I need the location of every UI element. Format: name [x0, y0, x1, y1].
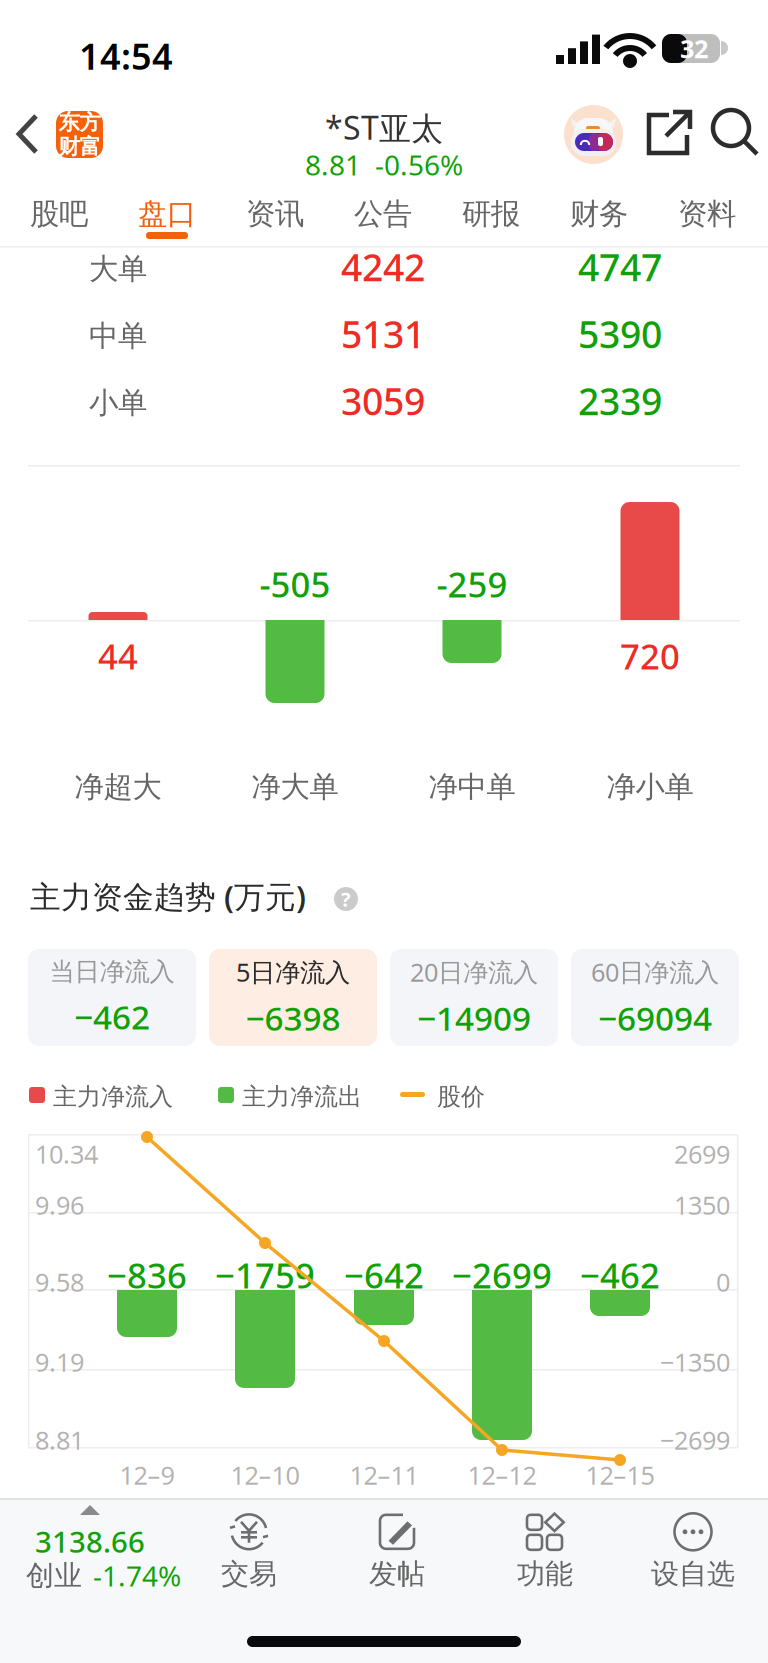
- button[interactable]: 盘口: [113, 187, 221, 241]
- staticText: 小单: [89, 385, 147, 421]
- staticText: 功能: [517, 1557, 573, 1591]
- staticText: 交易: [221, 1557, 277, 1591]
- staticText: 4242: [341, 242, 425, 292]
- button[interactable]: Help: [334, 887, 358, 911]
- staticText: 12–10: [230, 1458, 299, 1492]
- staticText: 10.34: [35, 1137, 98, 1171]
- staticText: −1350: [660, 1345, 730, 1379]
- button[interactable]: 3138.66: [0, 1498, 190, 1608]
- staticText: 8.81 -0.56%: [305, 146, 463, 183]
- staticText: 主力净流入: [53, 1082, 173, 1111]
- staticText: 14:54: [79, 32, 173, 80]
- button[interactable]: 公告: [329, 187, 437, 241]
- staticText: *ST亚太: [325, 106, 443, 149]
- staticText: 设自选: [651, 1557, 735, 1591]
- button[interactable]: 60日净流入: [571, 949, 739, 1046]
- staticText: 4747: [578, 242, 662, 292]
- staticText: 9.58: [35, 1265, 84, 1299]
- staticText: 2339: [578, 376, 662, 426]
- staticText: −2699: [452, 1252, 552, 1298]
- button[interactable]: 设自选: [623, 1506, 763, 1596]
- button[interactable]: Share: [640, 104, 698, 162]
- staticText: 9.96: [35, 1188, 84, 1222]
- staticText: 股吧: [30, 196, 88, 232]
- button[interactable]: 交易: [179, 1506, 319, 1596]
- staticText: 8.81: [35, 1423, 84, 1457]
- staticText: −462: [580, 1252, 660, 1298]
- staticText: -505: [259, 561, 330, 607]
- staticText: 2699: [674, 1137, 730, 1171]
- staticText: 净小单: [606, 769, 693, 805]
- staticText: 20日净流入: [410, 955, 538, 989]
- staticText: 12–11: [349, 1458, 418, 1492]
- staticText: ?: [341, 886, 351, 912]
- staticText: 发帖: [369, 1557, 425, 1591]
- button[interactable]: AI assistant: [564, 105, 623, 164]
- button[interactable]: 股吧: [5, 187, 113, 241]
- staticText: 12–12: [467, 1458, 536, 1492]
- button[interactable]: Back: [4, 103, 54, 165]
- staticText: 净超大: [74, 769, 161, 805]
- button[interactable]: 当日净流入: [28, 949, 196, 1046]
- staticText: -259: [436, 561, 507, 607]
- staticText: 东方: [58, 109, 100, 135]
- staticText: 资料: [678, 196, 736, 232]
- staticText: 60日净流入: [591, 955, 719, 989]
- staticText: 3138.66: [35, 1522, 145, 1561]
- staticText: 资讯: [246, 196, 304, 232]
- staticText: 财务: [570, 196, 628, 232]
- staticText: 中单: [89, 318, 147, 354]
- staticText: 5390: [578, 309, 662, 359]
- staticText: 财富: [58, 133, 100, 160]
- button[interactable]: 研报: [437, 187, 545, 241]
- staticText: 9.19: [35, 1345, 84, 1379]
- staticText: −2699: [660, 1423, 730, 1457]
- staticText: 净大单: [251, 769, 338, 805]
- staticText: 0: [716, 1265, 730, 1299]
- staticText: 大单: [89, 251, 147, 287]
- staticText: 创业: [26, 1558, 82, 1593]
- staticText: 44: [98, 633, 138, 679]
- staticText: 12–9: [119, 1458, 174, 1492]
- button[interactable]: 资讯: [221, 187, 329, 241]
- button[interactable]: 20日净流入: [390, 949, 558, 1046]
- staticText: −14909: [417, 996, 531, 1040]
- button[interactable]: Search: [706, 104, 764, 162]
- staticText: 5131: [341, 309, 425, 359]
- button[interactable]: 功能: [475, 1506, 615, 1596]
- button[interactable]: 发帖: [327, 1506, 467, 1596]
- staticText: −1759: [215, 1252, 315, 1298]
- staticText: 公告: [354, 196, 412, 232]
- staticText: 净中单: [428, 769, 515, 805]
- button[interactable]: East Money: [56, 111, 103, 158]
- staticText: 12–15: [585, 1458, 654, 1492]
- staticText: −462: [74, 994, 150, 1039]
- staticText: −836: [107, 1252, 187, 1298]
- staticText: 当日净流入: [49, 956, 174, 987]
- staticText: 股价: [437, 1082, 485, 1111]
- staticText: 32: [680, 32, 708, 65]
- staticText: 3059: [341, 376, 425, 426]
- staticText: 盘口: [138, 196, 196, 232]
- staticText: 主力资金趋势 (万元): [30, 876, 306, 917]
- staticText: 1350: [674, 1188, 730, 1222]
- staticText: −69094: [598, 996, 712, 1040]
- staticText: 5日净流入: [236, 955, 350, 989]
- staticText: 720: [620, 633, 680, 679]
- staticText: 主力净流出: [242, 1082, 362, 1111]
- staticText: 研报: [462, 196, 520, 232]
- button[interactable]: 5日净流入: [209, 949, 377, 1046]
- button[interactable]: 财务: [545, 187, 653, 241]
- staticText: -1.74%: [93, 1557, 181, 1594]
- staticText: −642: [344, 1252, 424, 1298]
- staticText: −6398: [245, 996, 340, 1040]
- button[interactable]: 资料: [653, 187, 761, 241]
